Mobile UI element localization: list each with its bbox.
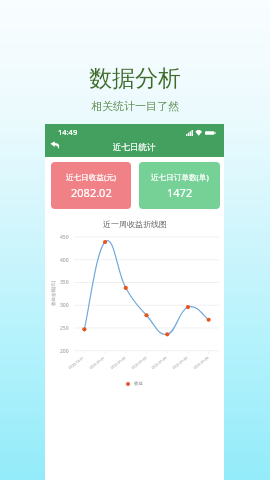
staticText: 2021-01-01 — [88, 355, 106, 370]
staticText: 近七日订单数(单) — [151, 172, 209, 182]
staticText: 1472 — [167, 185, 193, 200]
button[interactable]: Back — [45, 138, 224, 157]
staticText: 2020-12-31 — [67, 355, 85, 370]
staticText: 2021-01-04 — [150, 355, 168, 370]
staticText: 2021-01-05 — [171, 355, 189, 370]
staticText: 350 — [60, 279, 69, 286]
staticText: 2021-01-02 — [109, 355, 127, 370]
staticText: 2082.02 — [71, 185, 112, 200]
staticText: 相关统计一目了然 — [91, 99, 179, 113]
staticText: 14:49 — [58, 127, 78, 137]
staticText: 2021-01-03 — [130, 355, 148, 370]
staticText: 250 — [60, 325, 69, 332]
staticText: 近七日收益(元) — [66, 172, 117, 182]
staticText: 近一周收益折线图 — [103, 219, 167, 229]
staticText: 450 — [60, 234, 69, 241]
staticText: 300 — [60, 302, 69, 309]
staticText: 近七日统计 — [113, 142, 156, 153]
staticText: 收益金额(元) — [50, 280, 56, 306]
staticText: 200 — [60, 348, 69, 355]
button[interactable]: 近七日收益(元) — [51, 162, 131, 209]
button[interactable]: Back — [49, 139, 61, 151]
staticText: 收益 — [134, 381, 143, 387]
staticText: 数据分析 — [89, 64, 181, 93]
button[interactable]: 近七日订单数(单) — [139, 162, 220, 209]
staticText: 2021-01-06 — [192, 355, 210, 370]
staticText: 400 — [60, 257, 69, 264]
